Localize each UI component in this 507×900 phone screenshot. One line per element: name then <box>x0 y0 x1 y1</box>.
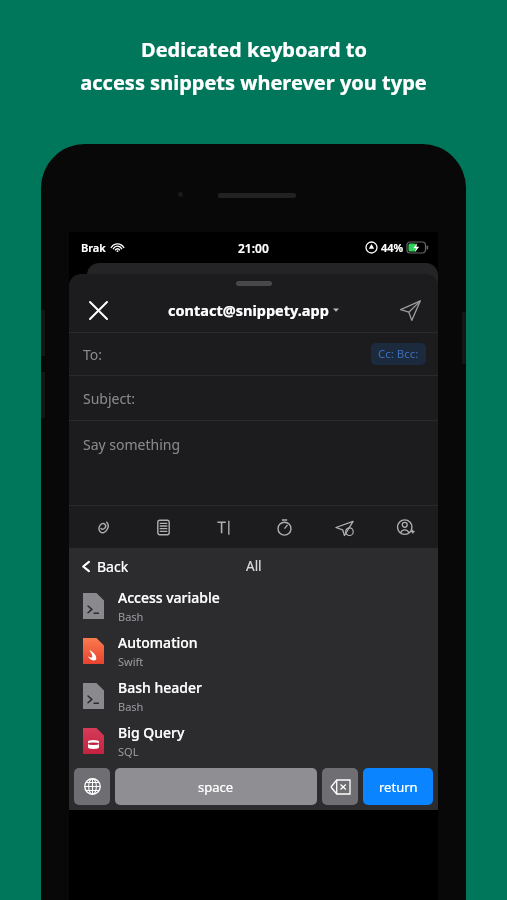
button[interactable]: Big Query <box>69 718 438 763</box>
button[interactable]: return <box>363 768 433 805</box>
button[interactable]: Timer <box>267 510 301 544</box>
staticText: Subject: <box>83 389 135 408</box>
button[interactable]: Attach <box>85 510 119 544</box>
staticText: 44% <box>381 240 404 255</box>
button[interactable]: Say something <box>69 421 438 505</box>
button[interactable]: Switch keyboard <box>74 768 110 805</box>
staticText: Access variable <box>118 588 220 607</box>
staticText: Say something <box>83 435 181 454</box>
staticText: Swift <box>118 654 144 669</box>
button[interactable]: Document <box>146 510 180 544</box>
button[interactable]: Subject: <box>69 376 438 420</box>
staticText: Big Query <box>118 723 185 742</box>
button[interactable]: space <box>115 768 317 805</box>
staticText: Back <box>97 557 129 576</box>
staticText: 21:00 <box>238 240 269 256</box>
staticText: Bash <box>118 699 144 714</box>
button[interactable]: contact@snippety.app <box>168 300 339 320</box>
button[interactable]: Add contact <box>388 510 422 544</box>
button[interactable]: Close <box>81 293 115 327</box>
staticText: Cc: Bcc: <box>378 346 419 362</box>
staticText: Automation <box>118 633 198 652</box>
button[interactable]: Access variable <box>69 583 438 628</box>
button[interactable]: All <box>246 557 262 575</box>
staticText: Brak <box>81 240 106 255</box>
staticText: Dedicated keyboard to <box>141 36 367 63</box>
staticText: Bash header <box>118 678 202 697</box>
button[interactable]: To: <box>69 333 438 375</box>
button[interactable]: Automation <box>69 628 438 673</box>
button[interactable]: Cc: Bcc: <box>378 346 419 362</box>
button[interactable]: Bash header <box>69 673 438 718</box>
staticText: access snippets wherever you type <box>80 69 427 96</box>
button[interactable]: Text format <box>206 510 240 544</box>
button[interactable]: Send <box>392 292 428 328</box>
staticText: contact@snippety.app <box>168 300 329 320</box>
button[interactable]: Schedule send <box>327 510 361 544</box>
button[interactable]: Delete <box>322 768 358 805</box>
staticText: SQL <box>118 744 139 759</box>
staticText: To: <box>83 345 103 364</box>
button[interactable]: Back <box>77 553 133 580</box>
staticText: Bash <box>118 609 144 624</box>
staticText: space <box>198 778 234 796</box>
staticText: return <box>379 778 418 796</box>
